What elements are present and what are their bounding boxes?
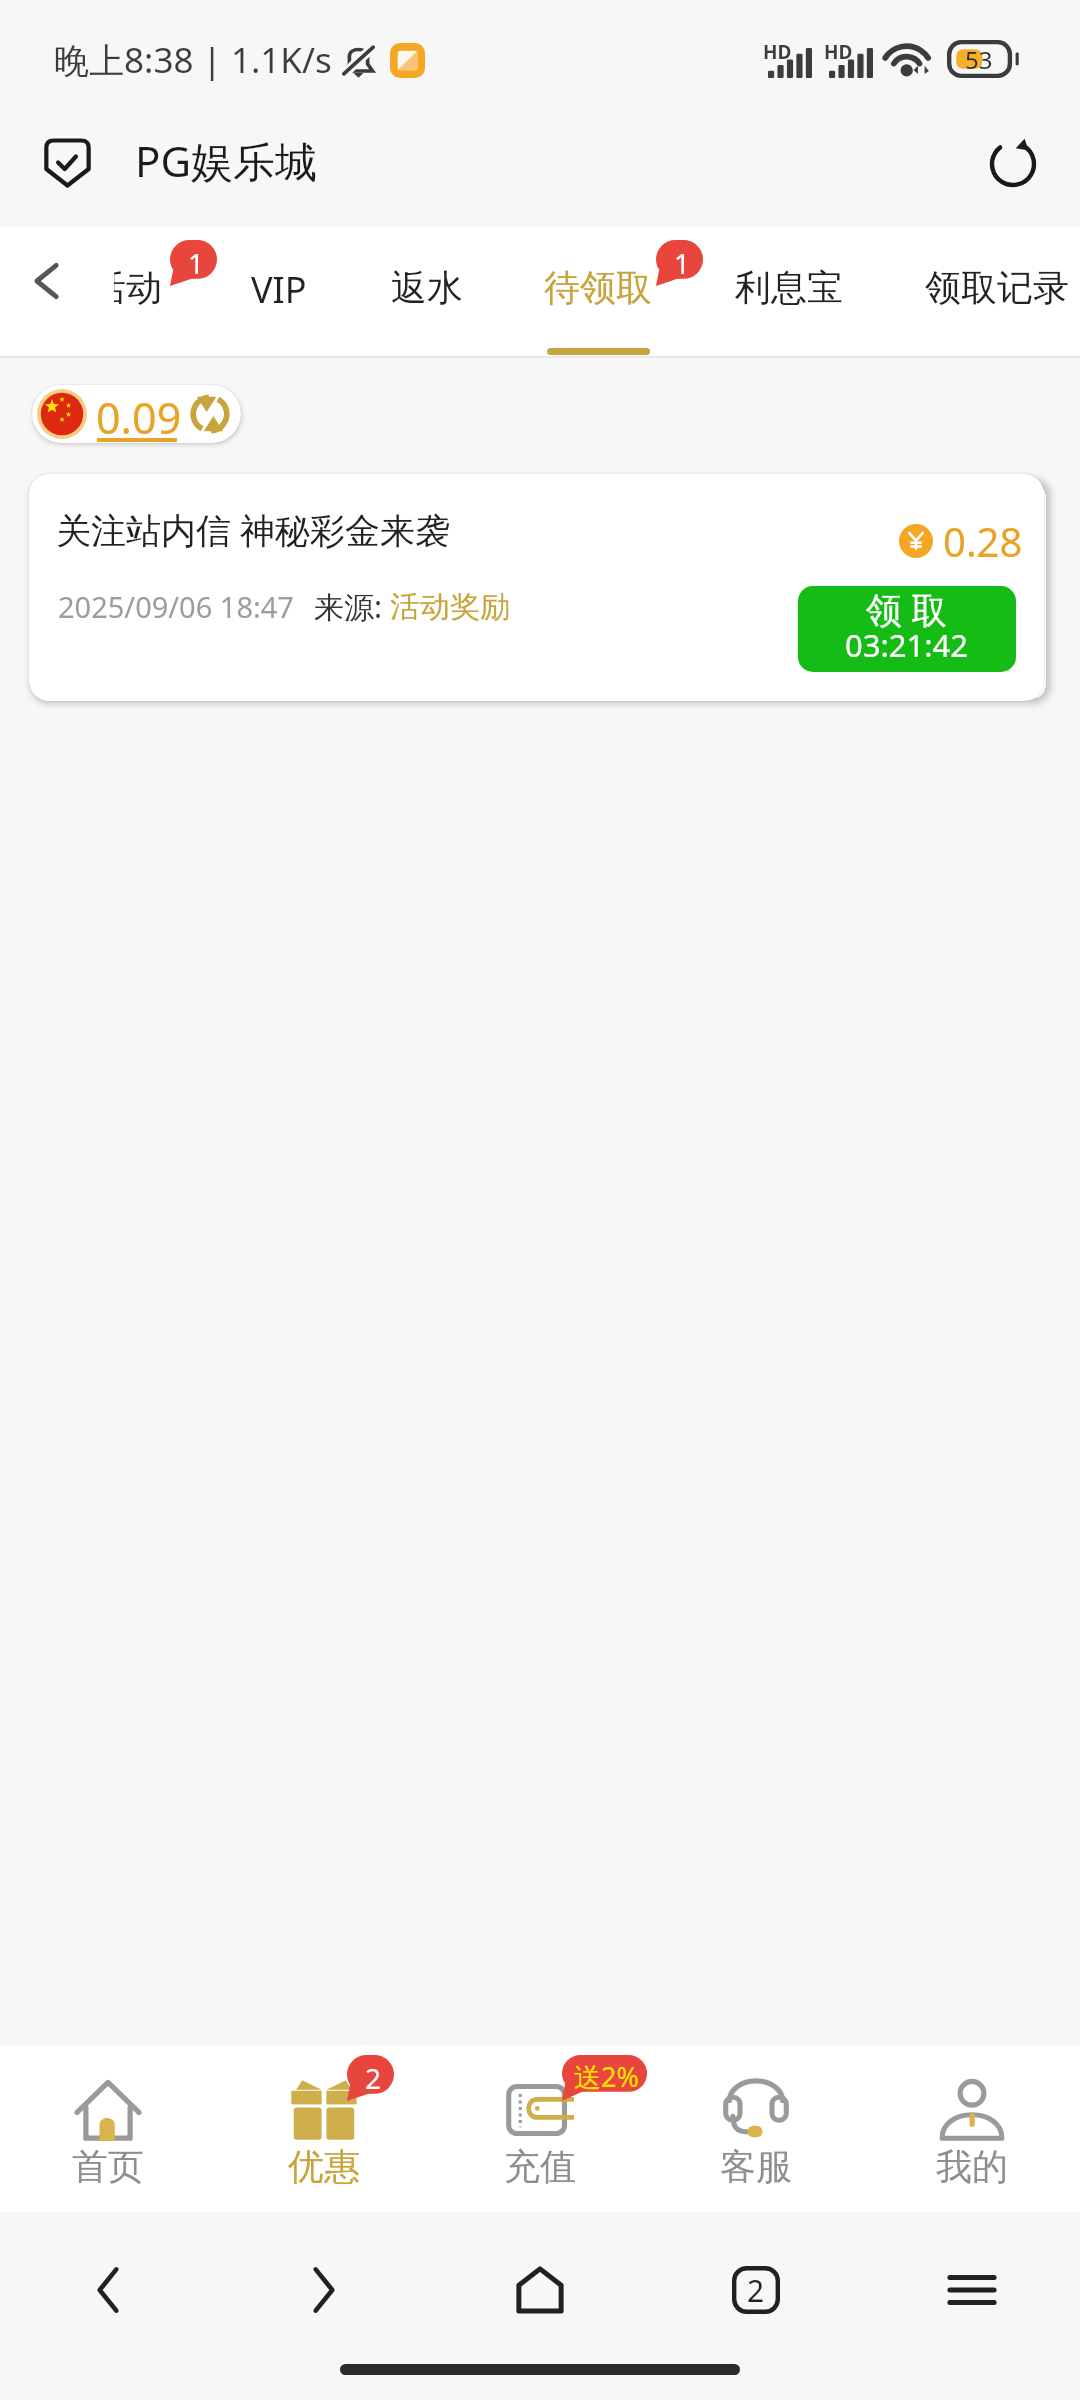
button[interactable]: 关注站内信 神秘彩金来袭 [29, 474, 1044, 701]
button[interactable]: Forward [216, 2212, 432, 2400]
staticText: HD [763, 39, 792, 65]
button[interactable]: 待领取 [544, 227, 652, 357]
staticText: 活动奖励 [390, 588, 510, 626]
staticText: 来源: [314, 586, 390, 627]
staticText: 03:21:42 [845, 624, 969, 666]
button[interactable]: 优惠 [216, 2045, 432, 2212]
button[interactable]: 领取记录 [925, 227, 1069, 357]
button[interactable]: 充值 [432, 2045, 648, 2212]
staticText: 领取记录 [925, 265, 1069, 310]
staticText: 1 [674, 244, 691, 282]
staticText: 客服 [720, 2144, 792, 2189]
staticText: 待领取 [544, 265, 652, 310]
staticText: 53 [965, 43, 993, 76]
staticText: 充值 [504, 2144, 576, 2189]
button[interactable]: 客服 [648, 2045, 864, 2212]
button[interactable]: 0.09 [32, 385, 241, 443]
button[interactable]: 领 取 [798, 586, 1016, 672]
button[interactable]: Tabs [648, 2212, 864, 2400]
staticText: 优惠 [288, 2144, 360, 2189]
button[interactable]: Back [0, 2212, 216, 2400]
button[interactable]: 返水 [391, 227, 463, 357]
button[interactable]: Back [8, 242, 86, 320]
button[interactable]: 活动 [114, 227, 162, 357]
staticText: 2 [365, 2059, 382, 2097]
button[interactable]: 我的 [864, 2045, 1080, 2212]
staticText: 送2% [574, 2058, 639, 2095]
staticText: 0.09 [96, 388, 182, 443]
staticText: 活动 [114, 265, 162, 310]
staticText: 领 取 [866, 586, 948, 634]
staticText: HD [824, 39, 853, 65]
staticText: 0.28 [943, 514, 1023, 568]
button[interactable]: VIP [251, 227, 307, 357]
button[interactable]: Home [432, 2212, 648, 2400]
staticText: 晚上8:38 | 1.1K/s [54, 36, 332, 84]
staticText: 2 [747, 2270, 765, 2311]
staticText: 1 [188, 244, 205, 282]
button[interactable]: 首页 [0, 2045, 216, 2212]
staticText: 关注站内信 神秘彩金来袭 [56, 506, 451, 554]
button[interactable]: Refresh [974, 125, 1052, 203]
button[interactable]: 利息宝 [735, 227, 843, 357]
staticText: VIP [251, 265, 307, 314]
staticText: 返水 [391, 265, 463, 310]
staticText: 我的 [936, 2144, 1008, 2189]
staticText: PG娱乐城 [135, 132, 317, 189]
button[interactable]: Menu [864, 2212, 1080, 2400]
staticText: 2025/09/06 18:47 [58, 587, 294, 626]
staticText: 首页 [72, 2144, 144, 2189]
staticText: 利息宝 [735, 265, 843, 310]
